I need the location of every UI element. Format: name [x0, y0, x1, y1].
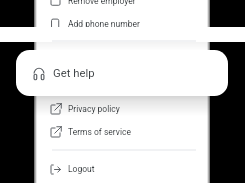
button[interactable]: Terms of service: [34, 121, 210, 143]
button[interactable]: Logout: [34, 158, 210, 180]
button[interactable]: Privacy policy: [34, 98, 210, 120]
staticText: Logout: [68, 164, 95, 174]
staticText: Get help: [53, 67, 95, 80]
staticText: Privacy policy: [68, 104, 120, 114]
button[interactable]: Remove employer: [34, 0, 210, 12]
staticText: Add phone number: [68, 19, 140, 29]
staticText: Remove employer: [68, 0, 136, 6]
button[interactable]: Get help: [16, 50, 228, 96]
button[interactable]: Add phone number: [34, 13, 210, 35]
staticText: Terms of service: [68, 127, 131, 137]
